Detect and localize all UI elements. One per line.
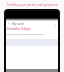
staticText: Low chance of getting pregnant bbox=[7, 32, 45, 35]
staticText: < bbox=[8, 22, 10, 26]
staticText: My cycle bbox=[12, 22, 24, 26]
staticText: ⋮ bbox=[54, 23, 57, 26]
staticText: Tracking your period and symptoms bbox=[7, 3, 58, 7]
button[interactable]: Back bbox=[7, 22, 11, 26]
staticText: Period in 5 days bbox=[7, 27, 31, 31]
button[interactable]: More bbox=[53, 22, 57, 26]
